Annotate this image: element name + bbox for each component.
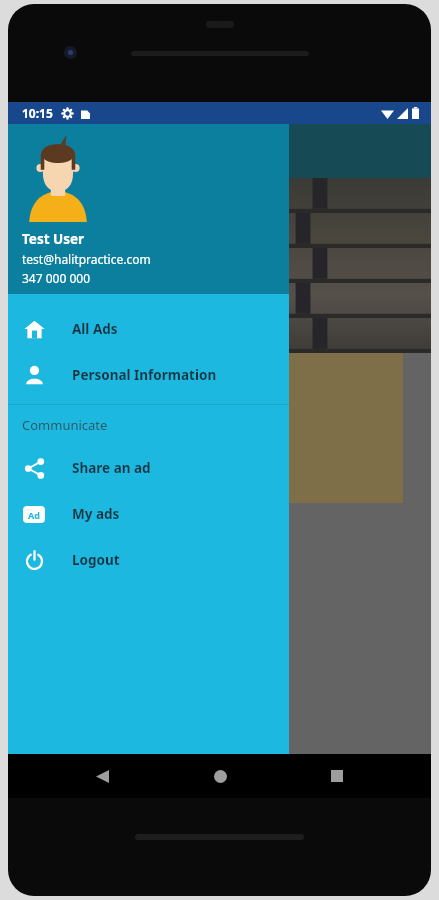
other: All Ads (24, 319, 45, 340)
button[interactable]: Recent apps (313, 754, 361, 798)
staticText: Communicate (22, 416, 108, 434)
staticText: All Ads (72, 320, 118, 338)
button[interactable]: All Ads (8, 306, 289, 352)
button[interactable]: Logout (8, 537, 289, 583)
button[interactable]: Personal Information (8, 352, 289, 398)
staticText: 10:15 (22, 105, 53, 121)
button[interactable]: My ads (8, 491, 289, 537)
staticText: Ad (28, 509, 40, 521)
staticText: Share an ad (72, 459, 151, 477)
other: Personal Information (24, 365, 45, 386)
other: Logout (24, 550, 45, 571)
staticText: Test User (22, 230, 85, 248)
button[interactable]: Home (196, 754, 244, 798)
staticText: My ads (72, 505, 120, 523)
staticText: 347 000 000 (22, 270, 91, 286)
button[interactable]: Back (78, 754, 126, 798)
staticText: Logout (72, 551, 120, 569)
staticText: Personal Information (72, 366, 217, 384)
other: Share an ad (24, 458, 45, 479)
button[interactable]: Share an ad (8, 445, 289, 491)
other: My ads (23, 506, 45, 523)
staticText: test@halitpractice.com (22, 251, 151, 267)
